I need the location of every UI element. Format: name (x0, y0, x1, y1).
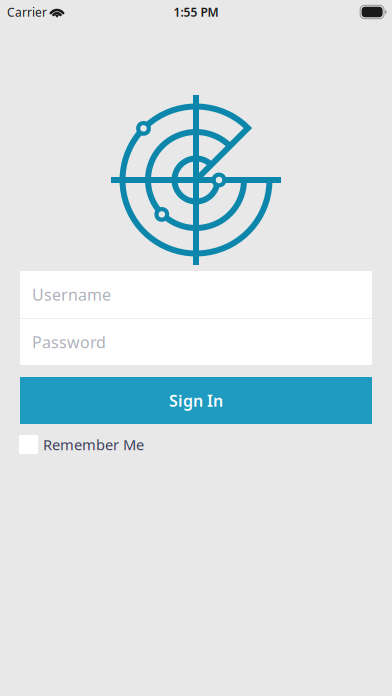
staticText: Password (32, 331, 106, 353)
button[interactable]: Remember Me (19, 435, 392, 454)
button[interactable]: Sign In (20, 377, 372, 424)
staticText: Remember Me (43, 435, 144, 454)
staticText: Sign In (169, 390, 223, 411)
staticText: Username (32, 284, 111, 305)
staticText: 1:55 PM (173, 4, 218, 20)
staticText: Carrier (7, 4, 47, 20)
